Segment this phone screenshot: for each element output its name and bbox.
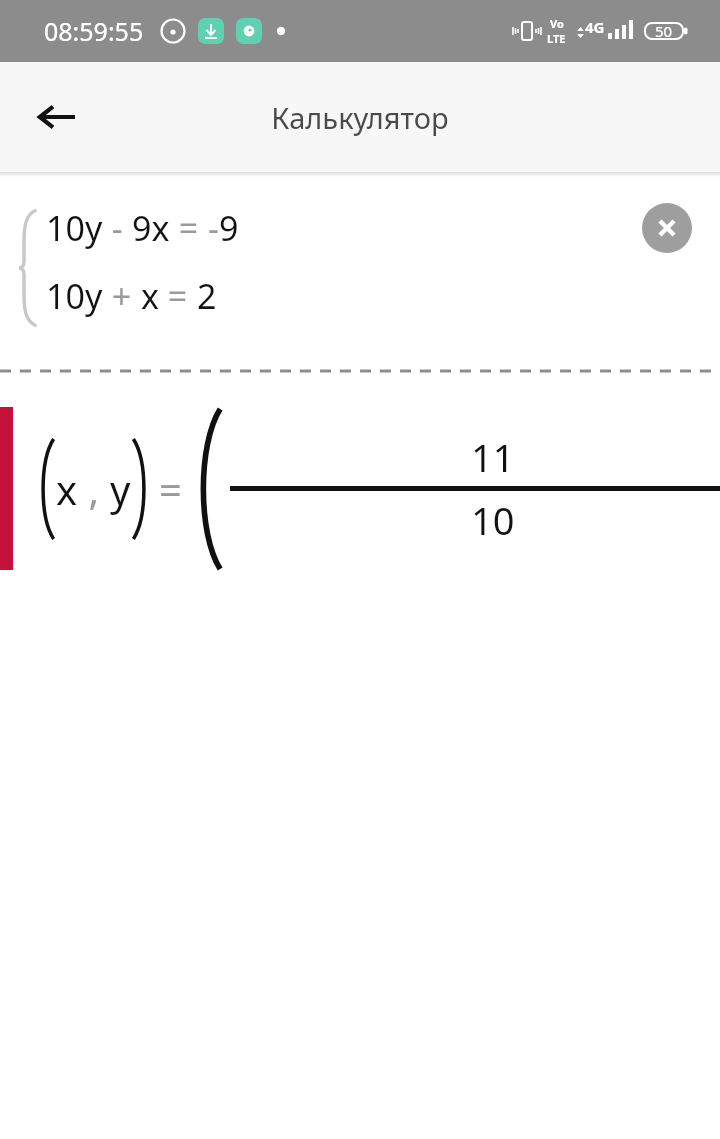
staticText: 11 — [471, 431, 515, 483]
staticText: 08:59:55 — [44, 14, 144, 48]
staticText: 10 — [471, 494, 515, 546]
staticText: LTE — [547, 31, 566, 46]
staticText: x — [56, 462, 78, 516]
staticText: x — [141, 273, 159, 319]
staticText: 10y — [46, 205, 103, 251]
staticText: 9x — [132, 205, 170, 251]
staticText: + — [103, 273, 141, 319]
button[interactable]: Clear — [642, 203, 692, 253]
staticText: 10y — [46, 273, 103, 319]
staticText: - — [103, 205, 132, 251]
staticText: = — [159, 273, 197, 319]
staticText: 2 — [197, 273, 217, 319]
staticText: = — [159, 462, 182, 516]
staticText: 50 — [655, 21, 673, 41]
staticText: Калькулятор — [271, 98, 449, 137]
staticText: 4G — [585, 17, 605, 37]
staticText: Vo — [550, 16, 564, 31]
staticText: = — [170, 205, 208, 251]
button[interactable]: Back — [22, 82, 92, 152]
staticText: - — [208, 205, 219, 251]
staticText: y — [110, 462, 131, 516]
staticText: , — [78, 462, 110, 516]
staticText: 9 — [219, 205, 239, 251]
